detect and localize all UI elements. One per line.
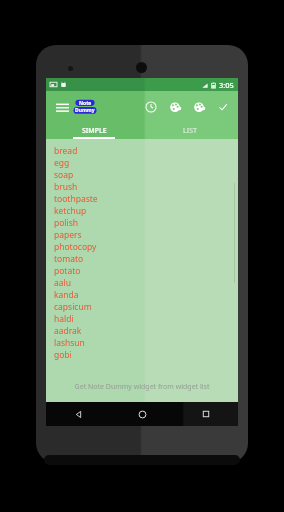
- button[interactable]: aadrak: [46, 325, 238, 337]
- staticText: haldi: [54, 313, 74, 325]
- button[interactable]: haldi: [46, 313, 238, 325]
- button[interactable]: egg: [46, 157, 238, 169]
- button[interactable]: SIMPLE: [46, 122, 142, 139]
- button[interactable]: Recent apps: [174, 402, 238, 426]
- button[interactable]: polish: [46, 217, 238, 229]
- button[interactable]: LIST: [142, 122, 238, 139]
- button[interactable]: aalu: [46, 277, 238, 289]
- button[interactable]: papers: [46, 229, 238, 241]
- staticText: papers: [54, 229, 82, 241]
- staticText: soap: [54, 169, 74, 181]
- staticText: 3:05: [219, 80, 234, 90]
- button[interactable]: potato: [46, 265, 238, 277]
- button[interactable]: Text colour: [165, 97, 185, 117]
- button[interactable]: Save note: [213, 97, 233, 117]
- staticText: tomato: [54, 253, 84, 265]
- button[interactable]: Open navigation drawer: [52, 97, 72, 117]
- staticText: aalu: [54, 277, 71, 289]
- staticText: Dummy: [75, 107, 95, 114]
- staticText: egg: [54, 157, 70, 169]
- button[interactable]: tomato: [46, 253, 238, 265]
- staticText: gobi: [54, 349, 72, 361]
- button[interactable]: Background colour: [189, 97, 209, 117]
- button[interactable]: kanda: [46, 289, 238, 301]
- button[interactable]: ketchup: [46, 205, 238, 217]
- staticText: polish: [54, 217, 79, 229]
- button[interactable]: Reminder: [141, 97, 161, 117]
- staticText: Get Note Dummy widget from widget list: [46, 382, 238, 392]
- staticText: potato: [54, 265, 81, 277]
- staticText: ketchup: [54, 205, 87, 217]
- button[interactable]: brush: [46, 181, 238, 193]
- staticText: photocopy: [54, 241, 97, 253]
- button[interactable]: bread: [46, 145, 238, 157]
- button[interactable]: lashsun: [46, 337, 238, 349]
- button[interactable]: gobi: [46, 349, 238, 361]
- staticText: aadrak: [54, 325, 82, 337]
- staticText: capsicum: [54, 301, 92, 313]
- button[interactable]: soap: [46, 169, 238, 181]
- staticText: bread: [54, 145, 78, 157]
- button[interactable]: toothpaste: [46, 193, 238, 205]
- staticText: LIST: [183, 126, 197, 136]
- button[interactable]: Note: [73, 98, 97, 116]
- staticText: toothpaste: [54, 193, 98, 205]
- staticText: Note: [79, 100, 92, 107]
- staticText: lashsun: [54, 337, 85, 349]
- staticText: SIMPLE: [82, 126, 107, 136]
- staticText: kanda: [54, 289, 79, 301]
- button[interactable]: Home: [110, 402, 174, 426]
- button[interactable]: Back: [46, 402, 110, 426]
- staticText: brush: [54, 181, 78, 193]
- button[interactable]: capsicum: [46, 301, 238, 313]
- button[interactable]: photocopy: [46, 241, 238, 253]
